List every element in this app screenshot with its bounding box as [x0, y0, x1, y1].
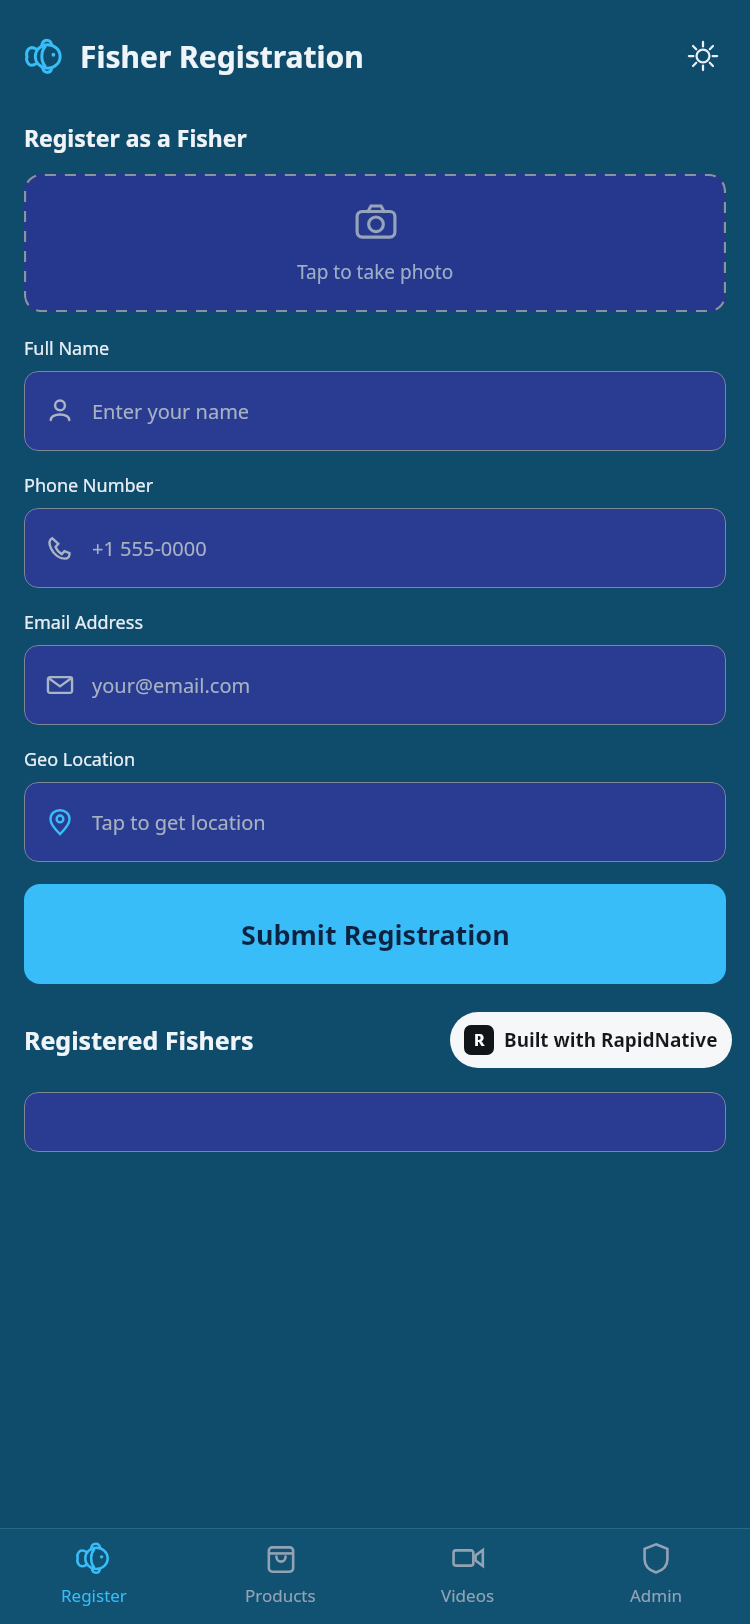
staticText: Full Name: [24, 336, 110, 361]
staticText: Registered Fishers: [24, 1023, 254, 1057]
staticText: Geo Location: [24, 747, 136, 772]
button[interactable]: Register: [0, 1529, 187, 1607]
staticText: R: [474, 1029, 485, 1051]
staticText: your@email.com: [92, 672, 251, 699]
staticText: Videos: [441, 1584, 495, 1607]
button[interactable]: your@email.com: [24, 645, 726, 725]
button[interactable]: +1 555-0000: [24, 508, 726, 588]
button[interactable]: Videos: [374, 1529, 562, 1607]
button[interactable]: Toggle theme: [680, 33, 726, 79]
staticText: Tap to take photo: [297, 259, 454, 285]
staticText: Submit Registration: [241, 916, 510, 953]
button[interactable]: Admin: [562, 1529, 750, 1607]
staticText: Phone Number: [24, 473, 154, 498]
button[interactable]: Products: [187, 1529, 374, 1607]
staticText: +1 555-0000: [92, 535, 207, 562]
staticText: Built with RapidNative: [504, 1027, 718, 1053]
staticText: Tap to get location: [92, 809, 266, 836]
staticText: Enter your name: [92, 398, 250, 425]
button[interactable]: R: [450, 1012, 732, 1068]
button[interactable]: Enter your name: [24, 371, 726, 451]
staticText: Products: [245, 1584, 316, 1607]
button[interactable]: Submit Registration: [24, 884, 726, 984]
staticText: Admin: [630, 1584, 683, 1607]
staticText: Fisher Registration: [80, 36, 364, 77]
staticText: Email Address: [24, 610, 144, 635]
staticText: Register as a Fisher: [24, 122, 247, 153]
button[interactable]: Tap to take photo: [24, 174, 726, 312]
staticText: Register: [61, 1584, 127, 1607]
button[interactable]: Tap to get location: [24, 782, 726, 862]
